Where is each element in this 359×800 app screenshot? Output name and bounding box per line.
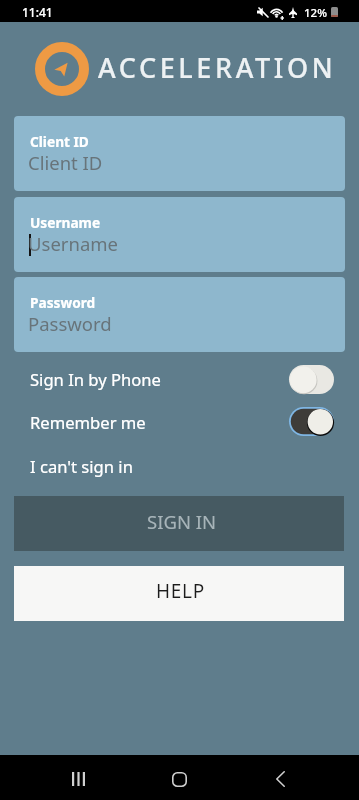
staticText: Username [30, 213, 101, 232]
staticText: Username [28, 231, 119, 256]
staticText: HELP [156, 578, 205, 604]
button[interactable]: SIGN IN [14, 496, 344, 551]
button[interactable]: HELP [14, 566, 344, 621]
staticText: Password [28, 311, 112, 336]
button[interactable]: Back [258, 763, 302, 795]
staticText: Password [30, 293, 96, 312]
staticText: Sign In by Phone [30, 368, 161, 391]
button[interactable]: Recent apps [56, 763, 100, 795]
staticText: SIGN IN [147, 509, 217, 534]
button[interactable]: Sign In by Phone [0, 357, 359, 401]
button[interactable]: Remember me [0, 400, 359, 444]
staticText: Client ID [30, 132, 89, 151]
staticText: 12% [304, 5, 327, 21]
button[interactable]: I can't sign in [0, 444, 359, 488]
button[interactable]: Username [14, 197, 345, 272]
button[interactable]: Home [157, 763, 201, 795]
button[interactable]: Password [14, 277, 345, 352]
staticText: 11:41 [22, 4, 53, 20]
staticText: I can't sign in [30, 455, 133, 478]
staticText: Remember me [30, 411, 146, 434]
staticText: Client ID [28, 150, 103, 175]
button[interactable]: Client ID [14, 116, 345, 191]
staticText: ACCELERATION [98, 49, 337, 86]
